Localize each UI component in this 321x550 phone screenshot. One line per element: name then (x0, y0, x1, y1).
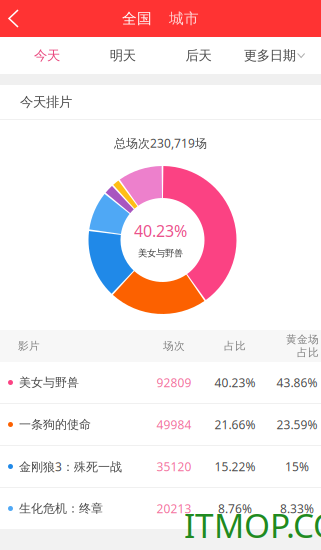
staticText: 美女与野兽 (19, 375, 79, 390)
staticText: 49984 (156, 416, 191, 432)
staticText: 生化危机：终章 (19, 501, 103, 516)
staticText: 今天排片 (20, 94, 72, 110)
staticText: 更多日期 (244, 47, 296, 64)
button[interactable]: 美女与野兽 (0, 362, 321, 403)
staticText: 8.33% (280, 500, 314, 516)
staticText: 15% (285, 458, 309, 474)
button[interactable]: 后天 (160, 37, 236, 74)
staticText: 全国 (122, 9, 152, 27)
staticText: 40.23% (134, 220, 187, 241)
staticText: 占比 (297, 346, 319, 359)
staticText: 43.86% (276, 374, 317, 390)
button[interactable]: 金刚狼3：殊死一战 (0, 446, 321, 487)
staticText: 一条狗的使命 (19, 417, 91, 432)
button[interactable]: 明天 (85, 37, 161, 74)
staticText: 35120 (156, 458, 191, 474)
staticText: 占比 (224, 339, 246, 352)
button[interactable]: 今天 (9, 37, 85, 74)
staticText: 20213 (156, 500, 191, 516)
staticText: 明天 (110, 47, 136, 64)
button[interactable]: Back (0, 0, 32, 37)
button[interactable]: 更多日期 (236, 37, 312, 74)
staticText: 总场次230,719场 (114, 135, 207, 151)
staticText: 8.76% (218, 500, 252, 516)
staticText: 城市 (169, 9, 199, 27)
staticText: 15.22% (214, 458, 255, 474)
staticText: 21.66% (214, 416, 255, 432)
staticText: 后天 (185, 47, 211, 64)
button[interactable]: 一条狗的使命 (0, 404, 321, 445)
staticText: 美女与野兽 (138, 247, 183, 259)
staticText: 场次 (163, 339, 185, 352)
staticText: 影片 (18, 339, 40, 352)
button[interactable]: 今天排片 (0, 85, 321, 119)
staticText: ITMOP.COM (184, 503, 321, 547)
button[interactable]: 城市 (169, 9, 199, 27)
button[interactable]: 全国 (122, 9, 152, 27)
staticText: 40.23% (214, 374, 255, 390)
button[interactable]: 生化危机：终章 (0, 488, 321, 529)
staticText: 金刚狼3：殊死一战 (19, 458, 122, 474)
staticText: 黄金场 (286, 333, 319, 346)
staticText: 今天 (34, 47, 60, 64)
staticText: 92809 (156, 374, 191, 390)
staticText: 23.59% (276, 416, 317, 432)
